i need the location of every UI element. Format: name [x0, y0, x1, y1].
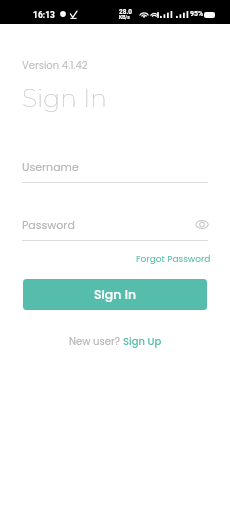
staticText: Forgot Password	[136, 253, 211, 266]
staticText: Sign In	[94, 286, 137, 303]
staticText: Password	[22, 217, 75, 232]
staticText: Version 4.1.42	[22, 58, 88, 72]
staticText: KB/s	[119, 14, 130, 20]
staticText: 95%	[190, 10, 204, 18]
button[interactable]: Forgot Password	[136, 253, 211, 266]
button[interactable]: Sign Up	[123, 334, 162, 348]
staticText: 16:13	[33, 10, 55, 20]
button[interactable]: Sign In	[23, 279, 207, 310]
staticText: New user?	[69, 334, 123, 348]
button[interactable]: Show password	[192, 214, 212, 234]
staticText: 28.0	[119, 8, 133, 16]
staticText: Username	[22, 159, 79, 174]
staticText: Sign In	[22, 83, 108, 113]
